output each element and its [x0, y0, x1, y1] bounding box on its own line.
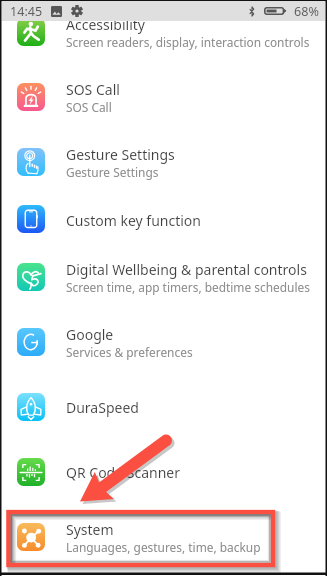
staticText: Accessibility	[66, 15, 145, 34]
button[interactable]: Gesture Settings	[2, 129, 325, 194]
staticText: Gesture Settings	[66, 164, 159, 180]
staticText: QR Code Scanner	[66, 463, 180, 482]
button[interactable]: System	[2, 504, 325, 569]
staticText: Gesture Settings	[66, 145, 175, 164]
staticText: Google	[66, 325, 114, 344]
button[interactable]: Digital Wellbeing & parental controls	[2, 244, 325, 309]
staticText: Languages, gestures, time, backup	[66, 539, 261, 555]
staticText: DuraSpeed	[66, 398, 139, 417]
staticText: Custom key function	[66, 211, 201, 230]
staticText: System	[66, 520, 114, 539]
staticText: Services & preferences	[66, 344, 193, 360]
button[interactable]: Google	[2, 309, 325, 374]
button[interactable]: Accessibility	[2, 0, 325, 64]
button[interactable]: Custom key function	[2, 194, 325, 244]
staticText: Screen time, app timers, bedtime schedul…	[66, 279, 310, 295]
staticText: SOS Call	[66, 99, 112, 115]
staticText: 68%	[294, 3, 319, 20]
staticText: Digital Wellbeing & parental controls	[66, 260, 307, 279]
staticText: Screen readers, display, interaction con…	[66, 34, 310, 50]
button[interactable]: DuraSpeed	[2, 374, 325, 439]
button[interactable]: SOS Call	[2, 64, 325, 129]
button[interactable]: QR Code Scanner	[2, 439, 325, 504]
staticText: 14:45	[10, 3, 43, 20]
staticText: SOS Call	[66, 80, 120, 99]
